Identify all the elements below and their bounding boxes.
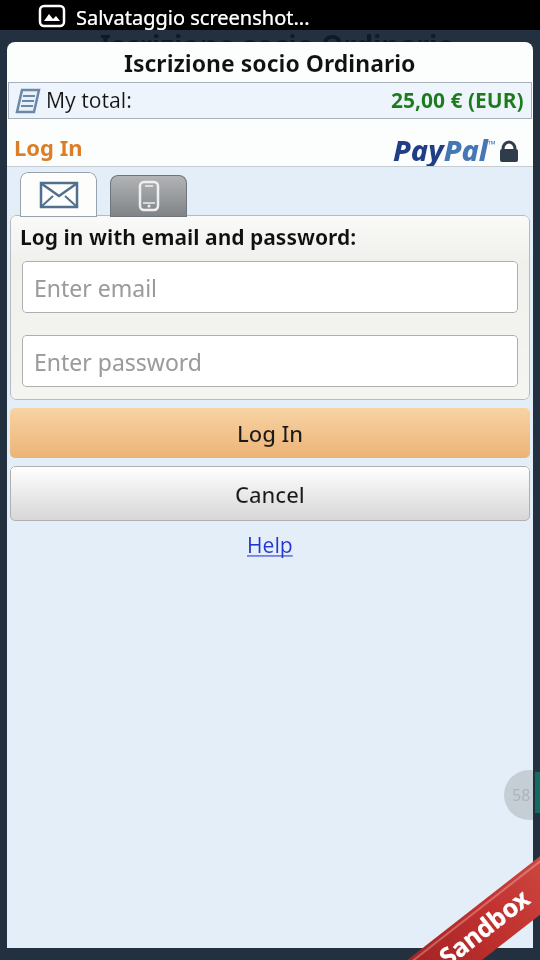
staticText: Iscrizione socio Ordinario: [100, 26, 455, 64]
staticText: Iscrizione socio Ordinario: [124, 47, 416, 78]
staticText: PayPal: [393, 130, 488, 169]
button[interactable]: Help: [247, 531, 293, 560]
button[interactable]: [110, 175, 187, 217]
button[interactable]: Cancel: [10, 466, 530, 521]
button[interactable]: Log In: [10, 408, 530, 458]
staticText: Log In: [237, 418, 304, 448]
button[interactable]: Enter email: [22, 261, 518, 313]
staticText: Enter email: [34, 272, 158, 303]
staticText: ™: [488, 137, 496, 151]
staticText: Sandbox: [431, 880, 537, 960]
staticText: Log In: [14, 132, 83, 162]
staticText: My total:: [46, 86, 132, 115]
staticText: Help: [247, 531, 293, 560]
button[interactable]: [20, 172, 97, 217]
staticText: Enter password: [34, 346, 203, 377]
staticText: 58: [512, 784, 531, 806]
staticText: Cancel: [235, 479, 305, 509]
staticText: 25,00 € (EUR): [391, 86, 524, 115]
button[interactable]: Enter password: [22, 335, 518, 387]
staticText: Salvataggio screenshot...: [76, 4, 310, 31]
staticText: Log in with email and password:: [20, 223, 357, 252]
